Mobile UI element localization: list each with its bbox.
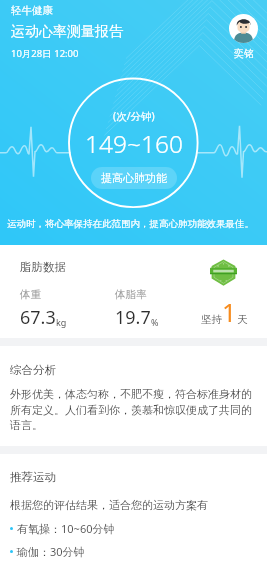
button[interactable]: 用户头像 [229, 14, 258, 43]
staticText: 推荐运动 [10, 470, 56, 484]
staticText: 提高心肺功能 [101, 171, 167, 185]
staticText: 1 [222, 295, 237, 329]
staticText: % [151, 316, 159, 328]
staticText: (次/分钟) [113, 109, 155, 123]
staticText: 运动心率测量报告 [11, 23, 123, 41]
staticText: 运动时，将心率保持在此范围内，提高心肺功能效果最佳。 [7, 218, 254, 230]
staticText: 67.3 [20, 305, 56, 330]
staticText: 根据您的评估结果，适合您的运动方案有 [10, 498, 208, 512]
staticText: 体重 [20, 288, 41, 301]
staticText: 轻牛健康 [11, 4, 53, 17]
staticText: 天 [237, 313, 248, 326]
staticText: 有氧操：10~60分钟 [17, 521, 115, 536]
staticText: 奕铭 [234, 47, 254, 60]
staticText: 综合分析 [10, 363, 56, 377]
staticText: 19.7 [115, 305, 151, 330]
staticText: 149~160 [85, 127, 183, 160]
button[interactable]: 提高心肺功能 [91, 167, 177, 189]
staticText: 体脂率 [115, 288, 147, 301]
staticText: 外形优美，体态匀称，不肥不瘦，符合标准身材的所有定义。人们看到你，羡慕和惊叹便成… [10, 387, 257, 432]
staticText: kg [56, 316, 67, 328]
staticText: 脂肪数据 [20, 260, 66, 274]
staticText: 10月28日 12:00 [11, 47, 79, 60]
staticText: 坚持 [201, 313, 222, 326]
staticText: 瑜伽：30分钟 [17, 544, 85, 559]
